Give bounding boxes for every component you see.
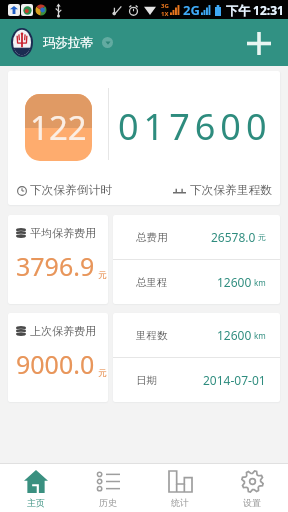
staticText: 平均保养费用 — [30, 226, 96, 240]
button[interactable]: 主页 — [0, 464, 72, 512]
staticText: 1X — [161, 10, 169, 18]
staticText: 9000.0 — [16, 347, 95, 381]
staticText: 历史 — [99, 497, 117, 508]
staticText: 元 — [98, 368, 107, 379]
staticText: 2G — [183, 1, 200, 19]
staticText: km — [254, 330, 266, 341]
button[interactable]: 总费用 — [113, 215, 280, 259]
staticText: 017600 — [118, 102, 272, 151]
staticText: 日期 — [136, 374, 157, 387]
staticText: 元 — [98, 270, 107, 281]
staticText: 3796.9 — [16, 249, 95, 283]
staticText: 玛莎拉蒂 — [43, 35, 93, 51]
button[interactable]: 日期 — [113, 358, 280, 402]
button[interactable]: 平均保养费用 — [8, 215, 108, 304]
staticText: 设置 — [243, 497, 261, 508]
staticText: 主页 — [27, 497, 45, 508]
button[interactable]: 上次保养费用 — [8, 313, 108, 402]
button[interactable]: 里程数 — [113, 313, 280, 357]
staticText: 26578.0 — [211, 229, 256, 245]
staticText: 上次保养费用 — [30, 324, 96, 338]
staticText: 里程数 — [136, 329, 168, 342]
staticText: 122 — [30, 105, 87, 150]
staticText: 总费用 — [136, 231, 168, 244]
button[interactable]: 设置 — [216, 464, 288, 512]
staticText: 统计 — [171, 497, 189, 508]
button[interactable]: 历史 — [72, 464, 144, 512]
button[interactable]: 总里程 — [113, 260, 280, 304]
button[interactable]: 统计 — [144, 464, 216, 512]
staticText: km — [254, 277, 266, 288]
staticText: 12600 — [217, 274, 252, 290]
staticText: 下午 12:31 — [226, 2, 284, 18]
staticText: 下次保养里程数 — [190, 183, 272, 198]
staticText: 元 — [258, 232, 266, 242]
staticText: 12600 — [217, 327, 252, 343]
staticText: 总里程 — [136, 276, 168, 289]
button[interactable]: Select car — [102, 37, 113, 48]
button[interactable]: Add — [238, 22, 280, 64]
staticText: 下次保养倒计时 — [30, 183, 112, 198]
staticText: 3G — [161, 2, 169, 10]
staticText: 2014-07-01 — [203, 372, 266, 388]
